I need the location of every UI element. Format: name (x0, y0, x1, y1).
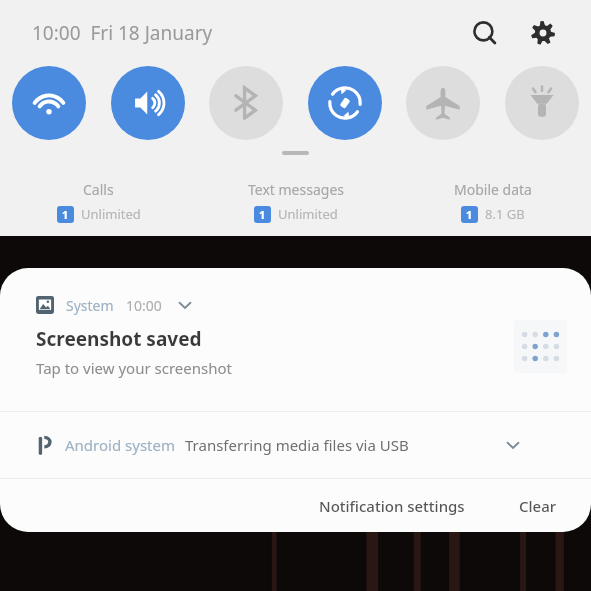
staticText: Calls (83, 180, 114, 199)
button[interactable]: Search (463, 11, 507, 55)
button[interactable]: Collapse (282, 151, 309, 155)
button[interactable]: Android system (0, 412, 591, 478)
button[interactable]: Settings (521, 11, 565, 55)
staticText: Android system (65, 435, 175, 455)
button[interactable]: Flight mode (406, 66, 480, 140)
button[interactable]: Auto rotate (308, 66, 382, 140)
button[interactable]: Text messages (197, 166, 394, 223)
staticText: 8.1 GB (485, 205, 525, 223)
staticText: 10:00 (126, 296, 162, 315)
button[interactable]: System (0, 268, 591, 411)
button[interactable]: Flashlight (505, 66, 579, 140)
button[interactable]: Clear (505, 486, 571, 526)
button[interactable]: Notification settings (305, 486, 479, 526)
staticText: 1 (62, 207, 69, 222)
button[interactable]: Wi-Fi (12, 66, 86, 140)
staticText: 1 (466, 207, 473, 222)
staticText: 10:00 Fri 18 January (32, 20, 213, 46)
staticText: Clear (519, 496, 557, 516)
staticText: Unlimited (278, 205, 338, 223)
staticText: Tap to view your screenshot (36, 358, 232, 378)
staticText: Mobile data (454, 180, 532, 199)
button[interactable]: Expand (174, 294, 196, 316)
staticText: System (66, 296, 114, 315)
staticText: Notification settings (319, 496, 465, 516)
button[interactable]: Expand (501, 433, 525, 457)
button[interactable]: Calls (0, 166, 197, 223)
staticText: Text messages (248, 180, 344, 199)
staticText: Transferring media files via USB (185, 435, 409, 455)
button[interactable]: Sound (111, 66, 185, 140)
button[interactable]: Bluetooth (209, 66, 283, 140)
staticText: Unlimited (81, 205, 141, 223)
button[interactable]: Mobile data (394, 166, 591, 223)
staticText: Screenshot saved (36, 326, 202, 352)
button[interactable]: Screenshot preview (514, 320, 567, 373)
staticText: 1 (259, 207, 266, 222)
